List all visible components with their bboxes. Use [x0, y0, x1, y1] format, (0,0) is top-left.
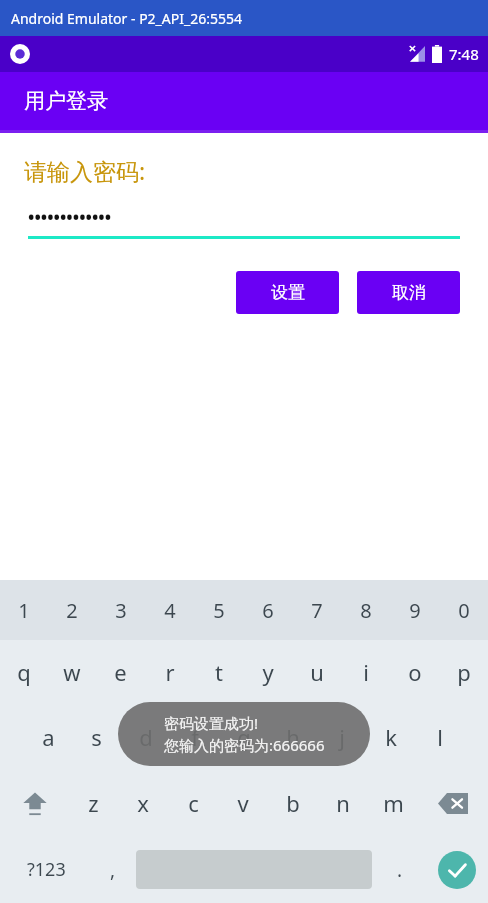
staticText: a — [42, 722, 55, 752]
button[interactable]: 7 — [292, 580, 341, 640]
button[interactable]: c — [168, 770, 218, 836]
staticText: m — [383, 788, 404, 818]
button[interactable]: n — [318, 770, 368, 836]
staticText: 7:48 — [449, 44, 479, 64]
staticText: h — [286, 722, 300, 752]
button[interactable]: x — [118, 770, 168, 836]
button[interactable]: f — [170, 704, 219, 770]
staticText: 0 — [458, 597, 470, 624]
staticText: 设置 — [271, 282, 305, 303]
staticText: r — [165, 657, 175, 687]
staticText: 请输入密码: — [24, 155, 146, 186]
button[interactable]: z — [69, 770, 118, 836]
button[interactable]: m — [368, 770, 418, 836]
staticText: k — [385, 722, 397, 752]
button[interactable]: Shift — [0, 770, 69, 836]
staticText: i — [363, 657, 369, 687]
button[interactable]: i — [341, 640, 390, 704]
staticText: 取消 — [392, 282, 426, 303]
staticText: 您输入的密码为:666666 — [164, 735, 325, 755]
staticText: y — [262, 657, 274, 687]
button[interactable]: t — [194, 640, 243, 704]
staticText: d — [139, 722, 153, 752]
staticText: b — [286, 788, 300, 818]
staticText: f — [191, 722, 199, 752]
button[interactable]: a — [24, 704, 72, 770]
button[interactable]: u — [292, 640, 341, 704]
button[interactable]: h — [268, 704, 317, 770]
staticText: 3 — [115, 597, 127, 624]
staticText: 8 — [360, 597, 372, 624]
button[interactable]: r — [145, 640, 194, 704]
staticText: e — [114, 657, 127, 687]
staticText: n — [336, 788, 350, 818]
button[interactable]: l — [415, 704, 464, 770]
staticText: x — [137, 788, 149, 818]
button[interactable]: 4 — [145, 580, 194, 640]
staticText: 1 — [18, 597, 30, 624]
staticText: ?123 — [27, 857, 66, 882]
staticText: v — [237, 788, 249, 818]
button[interactable]: 9 — [390, 580, 439, 640]
staticText: 用户登录 — [24, 88, 108, 114]
button[interactable]: d — [121, 704, 170, 770]
staticText: c — [188, 788, 199, 818]
button[interactable]: 取消 — [357, 271, 460, 314]
staticText: 密码设置成功! — [164, 713, 259, 733]
button[interactable]: o — [390, 640, 439, 704]
staticText: g — [237, 722, 251, 752]
staticText: w — [63, 657, 81, 687]
staticText: t — [215, 657, 223, 687]
staticText: 7 — [311, 597, 323, 624]
staticText: o — [408, 657, 422, 687]
staticText: l — [437, 722, 443, 752]
button[interactable]: b — [268, 770, 318, 836]
button[interactable]: Delete — [418, 770, 488, 836]
staticText: z — [88, 788, 99, 818]
button[interactable]: 0 — [439, 580, 488, 640]
button[interactable]: s — [72, 704, 121, 770]
staticText: . — [397, 857, 403, 883]
staticText: 2 — [66, 597, 78, 624]
button[interactable]: j — [317, 704, 366, 770]
staticText: q — [17, 657, 31, 687]
button[interactable]: 6 — [243, 580, 292, 640]
button[interactable]: q — [0, 640, 48, 704]
staticText: 5 — [213, 597, 225, 624]
button[interactable]: Enter — [426, 836, 488, 903]
button[interactable]: e — [96, 640, 145, 704]
staticText: 9 — [409, 597, 421, 624]
staticText: ••••••••••••• — [28, 206, 112, 229]
button[interactable]: . — [374, 836, 426, 903]
button[interactable]: 3 — [96, 580, 145, 640]
button[interactable]: g — [219, 704, 268, 770]
button[interactable]: p — [439, 640, 488, 704]
staticText: s — [91, 722, 102, 752]
button[interactable]: ?123 — [0, 836, 92, 903]
button[interactable]: 设置 — [236, 271, 339, 314]
button[interactable]: 1 — [0, 580, 48, 640]
staticText: 6 — [262, 597, 274, 624]
button[interactable]: 2 — [48, 580, 96, 640]
staticText: p — [457, 657, 471, 687]
staticText: Android Emulator - P2_API_26:5554 — [11, 9, 242, 28]
button[interactable]: 8 — [341, 580, 390, 640]
button[interactable]: v — [218, 770, 268, 836]
button[interactable]: 5 — [194, 580, 243, 640]
staticText: , — [110, 857, 116, 883]
button[interactable]: k — [366, 704, 415, 770]
button[interactable]: w — [48, 640, 96, 704]
button[interactable]: y — [243, 640, 292, 704]
staticText: j — [339, 722, 345, 752]
button[interactable]: , — [92, 836, 134, 903]
staticText: u — [310, 657, 324, 687]
staticText: 4 — [164, 597, 176, 624]
